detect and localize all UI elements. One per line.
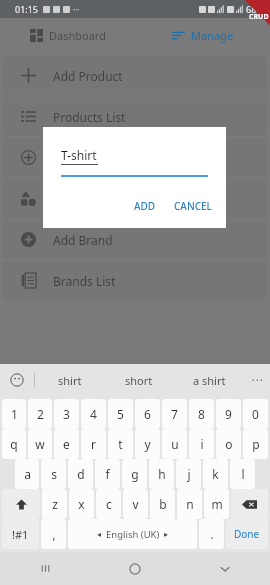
staticText: Products List bbox=[53, 109, 126, 125]
button[interactable]: Dashboard bbox=[0, 18, 135, 52]
button[interactable]: f bbox=[95, 459, 120, 489]
staticText: m bbox=[211, 496, 223, 512]
button[interactable]: d bbox=[68, 459, 93, 489]
staticText: f bbox=[105, 466, 110, 482]
staticText: 3 bbox=[63, 406, 70, 422]
staticText: d bbox=[77, 466, 85, 482]
button[interactable]: 7 bbox=[162, 399, 187, 429]
button[interactable]: short bbox=[104, 364, 174, 396]
button[interactable]: ADD bbox=[132, 196, 158, 216]
button[interactable]: y bbox=[135, 429, 160, 459]
button[interactable]: h bbox=[149, 459, 174, 489]
button[interactable]: 6 bbox=[135, 399, 160, 429]
button[interactable]: Add Product bbox=[3, 56, 267, 95]
button[interactable]: 5 bbox=[108, 399, 133, 429]
button[interactable]: Hide keyboard bbox=[180, 552, 270, 585]
button[interactable]: n bbox=[177, 489, 202, 519]
button[interactable]: 9 bbox=[216, 399, 241, 429]
button[interactable]: Home bbox=[90, 552, 180, 585]
button[interactable]: Products List bbox=[3, 97, 267, 136]
button[interactable] bbox=[3, 138, 267, 177]
button[interactable]: x bbox=[69, 489, 94, 519]
staticText: a shirt bbox=[193, 373, 226, 388]
button[interactable] bbox=[3, 179, 267, 218]
staticText: ⋯ bbox=[251, 373, 263, 387]
staticText: 01:15 bbox=[15, 3, 39, 15]
staticText: v bbox=[132, 496, 139, 512]
button[interactable]: t bbox=[108, 429, 133, 459]
staticText: . bbox=[210, 526, 214, 542]
staticText: b bbox=[159, 496, 167, 512]
button[interactable]: CANCEL bbox=[172, 196, 214, 216]
staticText: Add Brand bbox=[53, 232, 113, 248]
button[interactable]: 2 bbox=[28, 399, 52, 429]
staticText: o bbox=[225, 436, 233, 452]
staticText: 8 bbox=[198, 406, 205, 422]
button[interactable]: j bbox=[176, 459, 201, 489]
staticText: 0 bbox=[252, 406, 259, 422]
staticText: w bbox=[35, 436, 45, 452]
button[interactable]: Shift bbox=[2, 489, 40, 519]
button[interactable]: 4 bbox=[81, 399, 106, 429]
staticText: shirt bbox=[58, 373, 82, 388]
staticText: e bbox=[63, 436, 70, 452]
button[interactable]: . bbox=[199, 519, 224, 549]
button[interactable]: Recents bbox=[0, 552, 90, 585]
staticText: u bbox=[171, 436, 179, 452]
button[interactable]: Manage bbox=[135, 18, 270, 52]
staticText: ◂ bbox=[97, 530, 102, 539]
button[interactable]: e bbox=[54, 429, 79, 459]
staticText: i bbox=[200, 436, 204, 452]
button[interactable]: , bbox=[41, 519, 66, 549]
button[interactable]: r bbox=[81, 429, 106, 459]
button[interactable]: Backspace bbox=[231, 489, 268, 519]
button[interactable]: shirt bbox=[35, 364, 104, 396]
button[interactable]: b bbox=[150, 489, 175, 519]
button[interactable]: Brands List bbox=[3, 261, 267, 300]
button[interactable]: 0 bbox=[243, 399, 268, 429]
button[interactable]: 1 bbox=[2, 399, 26, 429]
button[interactable]: s bbox=[41, 459, 66, 489]
staticText: a bbox=[24, 466, 31, 482]
button[interactable]: v bbox=[123, 489, 148, 519]
button[interactable]: m bbox=[204, 489, 229, 519]
staticText: Manage bbox=[191, 28, 234, 43]
staticText: c bbox=[106, 496, 112, 512]
button[interactable]: i bbox=[189, 429, 214, 459]
button[interactable]: k bbox=[203, 459, 228, 489]
button[interactable]: l bbox=[230, 459, 255, 489]
button[interactable]: z bbox=[42, 489, 67, 519]
button[interactable]: 8 bbox=[189, 399, 214, 429]
button[interactable]: a shirt bbox=[174, 364, 244, 396]
staticText: p bbox=[252, 436, 260, 452]
button[interactable]: p bbox=[243, 429, 268, 459]
button[interactable]: 3 bbox=[54, 399, 79, 429]
staticText: CANCEL bbox=[174, 199, 212, 213]
staticText: x bbox=[78, 496, 85, 512]
button[interactable]: Done bbox=[226, 519, 268, 549]
staticText: 1 bbox=[11, 406, 18, 422]
staticText: 5 bbox=[117, 406, 124, 422]
button[interactable]: u bbox=[162, 429, 187, 459]
button[interactable]: a bbox=[15, 459, 39, 489]
button[interactable]: ◂ bbox=[68, 519, 197, 549]
button[interactable]: w bbox=[28, 429, 52, 459]
staticText: CRUD bbox=[249, 12, 269, 22]
staticText: 2 bbox=[37, 406, 44, 422]
button[interactable]: o bbox=[216, 429, 241, 459]
staticText: 6 bbox=[144, 406, 151, 422]
button[interactable]: q bbox=[2, 429, 26, 459]
button[interactable]: !#1 bbox=[2, 519, 39, 549]
staticText: z bbox=[52, 496, 58, 512]
button[interactable]: Add Brand bbox=[3, 220, 267, 259]
button[interactable]: g bbox=[122, 459, 147, 489]
button[interactable]: Stickers bbox=[0, 364, 34, 396]
button[interactable]: c bbox=[96, 489, 121, 519]
button[interactable]: More suggestions bbox=[244, 364, 270, 396]
staticText: Dashboard bbox=[49, 28, 106, 43]
staticText: Brands List bbox=[53, 273, 116, 289]
staticText: , bbox=[52, 526, 56, 542]
staticText: 7 bbox=[171, 406, 178, 422]
staticText: ··· bbox=[73, 4, 80, 15]
staticText: 4 bbox=[90, 406, 97, 422]
